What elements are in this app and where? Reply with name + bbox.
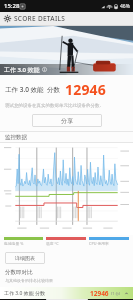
button[interactable]: 工作 3.0 效能 分数 xyxy=(0,287,133,299)
staticText: 与其他设备的排名比较结果 xyxy=(5,278,53,283)
other: App logo xyxy=(4,15,11,22)
staticText: 工作 3.0 效能 分数 xyxy=(4,290,45,297)
staticText: 工作 3.0 效能 分数 xyxy=(5,85,60,94)
staticText: 监控数据 xyxy=(5,134,27,141)
staticText: 15:28 xyxy=(4,2,20,10)
button[interactable]: CPU 使用率 xyxy=(89,237,129,246)
staticText: 工作 3.0 效能 xyxy=(4,66,40,74)
button[interactable]: Home xyxy=(46,299,88,300)
staticText: 测试您的设备在真实的数据单元比此设备的分数。 xyxy=(5,103,128,109)
staticText: 温度 °C xyxy=(46,241,59,246)
other: Info xyxy=(42,67,47,72)
staticText: 分数即对比 xyxy=(5,269,33,276)
button[interactable]: 详细图表 xyxy=(5,252,45,264)
staticText: 46% xyxy=(120,3,130,10)
staticText: CPU 使用率 xyxy=(89,241,109,246)
staticText: 电池电量 % xyxy=(4,241,24,246)
button[interactable]: 温度 °C xyxy=(46,237,86,246)
staticText: (1 台) xyxy=(111,291,121,296)
button[interactable]: 分享 xyxy=(32,114,102,127)
staticText: 12946 xyxy=(90,289,109,298)
other: Expand xyxy=(124,291,129,296)
staticText: 详细图表 xyxy=(15,255,35,261)
staticText: 分享 xyxy=(61,117,73,125)
staticText: 12946 xyxy=(65,80,107,99)
staticText: SCORE DETAILS xyxy=(14,14,66,23)
button[interactable]: 电池电量 % xyxy=(4,237,43,246)
